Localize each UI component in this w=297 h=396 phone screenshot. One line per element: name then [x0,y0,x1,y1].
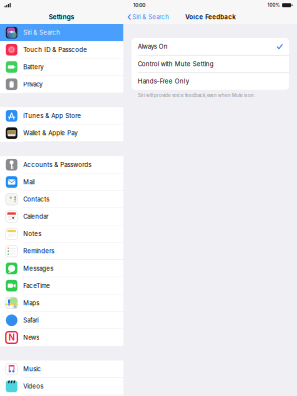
staticText: Accounts & Passwords [23,161,91,168]
staticText: N [9,332,15,342]
staticText: 100% [267,2,280,8]
button[interactable]: FaceTime [0,277,123,294]
staticText: Voice Feedback [185,13,235,21]
staticText: Wallet & Apple Pay [23,129,77,137]
button[interactable]: Messages [0,260,123,277]
button[interactable]: Touch ID & Passcode [0,41,123,59]
button[interactable]: Control with Mute Setting [131,55,289,72]
button[interactable]: Videos [0,378,123,395]
staticText: Videos [23,383,43,390]
button[interactable]: iTunes & App Store [0,107,123,125]
staticText: Privacy [23,81,42,88]
staticText: Hands-Free Only [138,78,189,85]
button[interactable]: Wallet & Apple Pay [0,125,123,142]
button[interactable]: Always On [131,38,289,55]
staticText: Contacts [23,196,49,203]
staticText: Music [23,365,41,373]
staticText: Battery [23,63,43,71]
staticText: Mail [23,178,34,186]
staticText: Control with Mute Setting [138,60,214,68]
staticText: iTunes & App Store [23,112,81,119]
staticText: Notes [23,230,41,237]
button[interactable]: N [0,329,123,346]
button[interactable]: Contacts [0,191,123,208]
staticText: News [23,334,39,341]
button[interactable]: Music [0,361,123,378]
staticText: Reminders [23,247,54,255]
button[interactable]: Maps [0,294,123,312]
staticText: Safari [23,316,38,324]
button[interactable]: Siri & Search [123,11,169,23]
staticText: Always On [138,43,168,50]
staticText: 10:00 [133,2,145,8]
button[interactable]: Siri & Search [0,24,123,41]
staticText: Messages [23,265,53,272]
button[interactable]: Notes [0,225,123,243]
staticText: Maps [23,299,39,307]
button[interactable]: Hands-Free Only [131,73,289,90]
staticText: FaceTime [23,282,50,289]
button[interactable]: Accounts & Passwords [0,156,123,174]
staticText: Siri & Search [23,29,60,36]
button[interactable]: Safari [0,312,123,329]
button[interactable]: Calendar [0,208,123,225]
staticText: Siri & Search [132,13,169,21]
staticText: Siri will provide voice feedback, even w… [138,93,255,98]
button[interactable]: Privacy [0,76,123,93]
button[interactable]: Reminders [0,243,123,260]
button[interactable]: Battery [0,59,123,76]
staticText: Calendar [23,213,48,220]
staticText: Touch ID & Passcode [23,46,87,53]
staticText: Settings [49,13,75,21]
button[interactable]: Mail [0,174,123,191]
